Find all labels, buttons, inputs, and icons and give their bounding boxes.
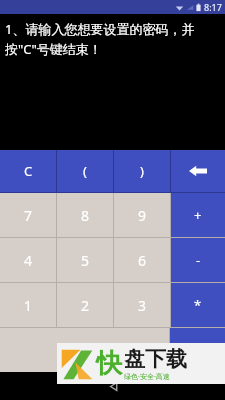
- button[interactable]: 6: [114, 238, 170, 282]
- staticText: 2: [81, 296, 90, 315]
- button[interactable]: *: [171, 283, 225, 327]
- button[interactable]: +: [171, 193, 225, 237]
- staticText: 0: [80, 341, 89, 360]
- staticText: 9: [138, 206, 147, 225]
- button[interactable]: 9: [114, 193, 170, 237]
- button[interactable]: /: [170, 328, 225, 372]
- staticText: +: [194, 206, 202, 224]
- staticText: 3: [138, 296, 147, 315]
- staticText: -: [196, 251, 201, 269]
- button[interactable]: 2: [57, 283, 113, 327]
- staticText: 6: [138, 251, 147, 270]
- staticText: /: [195, 341, 200, 359]
- button[interactable]: Backspace: [171, 150, 225, 192]
- staticText: 5: [81, 251, 90, 270]
- button[interactable]: 0: [0, 328, 169, 372]
- staticText: 1: [24, 296, 33, 315]
- button[interactable]: -: [171, 238, 225, 282]
- button[interactable]: 8: [57, 193, 113, 237]
- staticText: 7: [24, 206, 33, 225]
- button[interactable]: 3: [114, 283, 170, 327]
- button[interactable]: (: [57, 150, 113, 192]
- staticText: C: [24, 162, 33, 180]
- staticText: 盘下载: [124, 346, 187, 372]
- staticText: 4: [24, 251, 33, 270]
- staticText: *: [194, 296, 202, 314]
- staticText: 绿色·安全·高速: [124, 372, 170, 382]
- staticText: 快: [96, 347, 122, 380]
- staticText: (: [83, 162, 87, 180]
- button[interactable]: C: [0, 150, 56, 192]
- button[interactable]: 4: [0, 238, 56, 282]
- staticText: 8: [81, 206, 90, 225]
- button[interactable]: ): [114, 150, 170, 192]
- staticText: 8:17: [204, 1, 222, 13]
- staticText: 1、请输入您想要设置的密码，并 按"C"号键结束！: [5, 20, 195, 58]
- button[interactable]: Back: [100, 373, 126, 399]
- staticText: ): [140, 162, 144, 180]
- button[interactable]: 1: [0, 283, 56, 327]
- button[interactable]: 7: [0, 193, 56, 237]
- button[interactable]: 5: [57, 238, 113, 282]
